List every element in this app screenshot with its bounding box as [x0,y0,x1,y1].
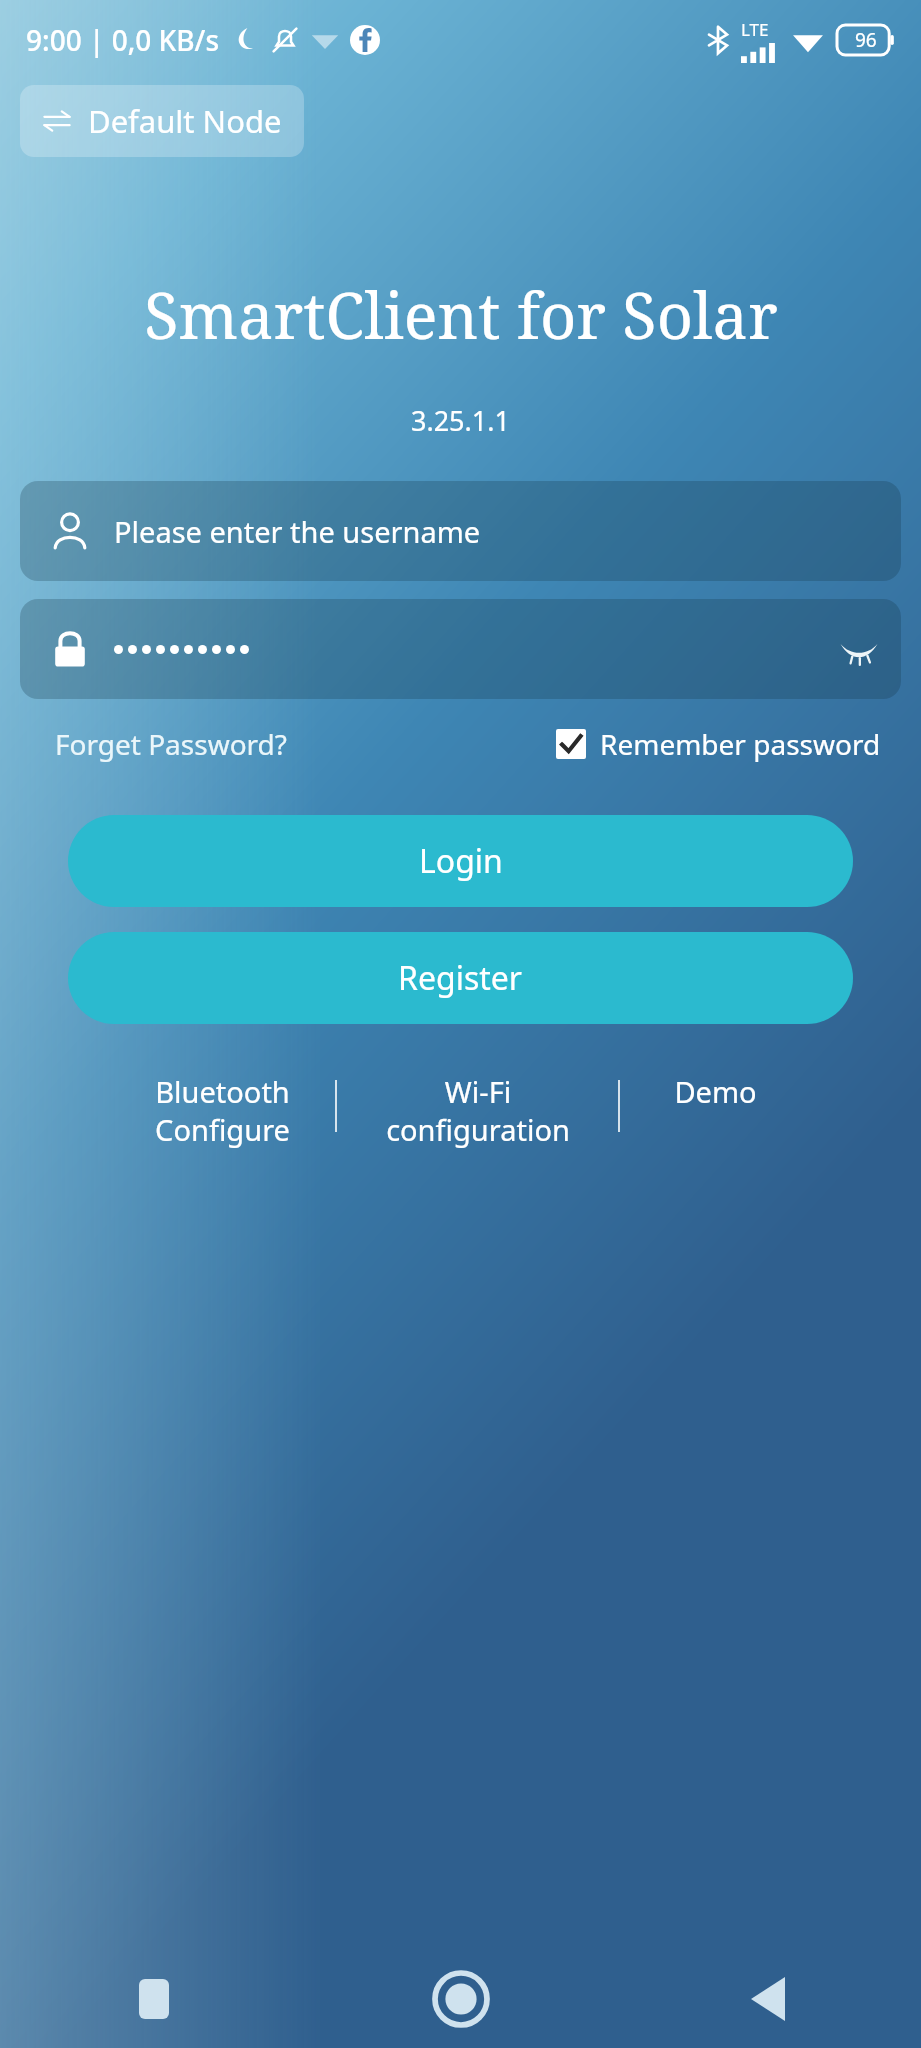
staticText: Wi-Fi configuration [386,1072,570,1149]
staticText: Please enter the username [114,512,481,551]
staticText: Forget Password? [55,725,287,763]
staticText: Login [419,839,503,883]
button[interactable]: Home [307,1950,614,2048]
button[interactable]: Forget Password? [55,725,287,763]
button[interactable]: Recents [0,1950,307,2048]
staticText: Demo [674,1072,757,1111]
button[interactable]: Wi-Fi configuration [337,1072,618,1149]
button[interactable]: Bluetooth Configure [110,1072,335,1149]
staticText: SmartClient for Solar [144,272,778,358]
button[interactable]: Login [68,815,853,907]
staticText: Default Node [88,100,282,142]
staticText: LTE [741,18,769,41]
staticText: Remember password [600,725,881,763]
staticText: 9:00 | 0,0 KB/s [26,21,220,59]
button[interactable]: Register [68,932,853,1024]
button[interactable]: Demo [620,1072,811,1111]
button[interactable]: Remember password [556,725,881,763]
staticText: 96 [855,27,877,53]
staticText: 3.25.1.1 [411,402,510,439]
staticText: Bluetooth Configure [155,1072,290,1149]
button[interactable]: Show password [831,621,887,677]
button[interactable]: Back [614,1950,921,2048]
button[interactable]: Default Node [20,85,304,157]
button[interactable]: Show password [20,599,901,699]
staticText: Register [398,956,523,1000]
button[interactable]: Please enter the username [20,481,901,581]
